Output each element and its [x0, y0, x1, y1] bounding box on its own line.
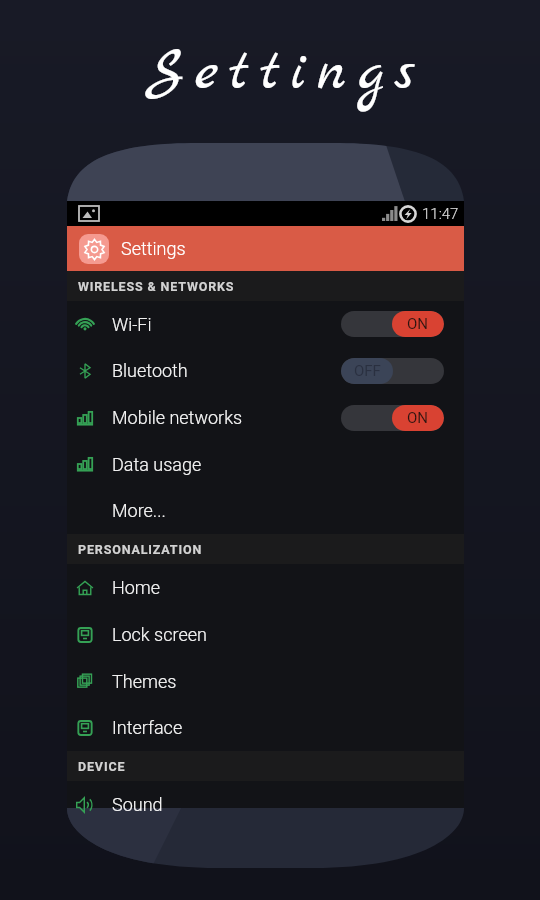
staticText: ON — [407, 315, 429, 333]
button[interactable]: Bluetooth — [67, 347, 464, 394]
button[interactable]: Settings — [67, 226, 464, 271]
staticText: Wi-Fi — [112, 314, 152, 335]
staticText: Data usage — [112, 454, 202, 475]
staticText: Interface — [112, 717, 183, 738]
staticText: PERSONALIZATION — [78, 542, 203, 557]
staticText: Mobile networks — [112, 407, 243, 428]
staticText: WIRELESS & NETWORKS — [78, 279, 235, 294]
staticText: 11:47 — [422, 205, 459, 223]
staticText: DEVICE — [78, 759, 126, 774]
button[interactable]: On — [341, 405, 444, 431]
button[interactable]: More... — [67, 487, 464, 534]
staticText: OFF — [354, 362, 381, 380]
staticText: Themes — [112, 671, 177, 692]
staticText: Lock screen — [112, 624, 207, 645]
button[interactable]: Sound — [67, 781, 464, 828]
button[interactable]: Home — [67, 564, 464, 611]
staticText: Sound — [112, 794, 163, 815]
button[interactable]: Mobile networks — [67, 394, 464, 441]
staticText: Settings — [16, 36, 540, 111]
button[interactable]: Themes — [67, 658, 464, 704]
staticText: Bluetooth — [112, 360, 188, 381]
staticText: More... — [112, 500, 166, 521]
button[interactable]: Off — [341, 358, 444, 384]
button[interactable]: Lock screen — [67, 611, 464, 658]
staticText: ON — [407, 409, 429, 427]
staticText: Home — [112, 577, 161, 598]
button[interactable]: Data usage — [67, 441, 464, 487]
button[interactable]: Wi-Fi — [67, 301, 464, 347]
staticText: Settings — [121, 238, 186, 259]
button[interactable]: On — [341, 311, 444, 337]
button[interactable]: Interface — [67, 704, 464, 751]
